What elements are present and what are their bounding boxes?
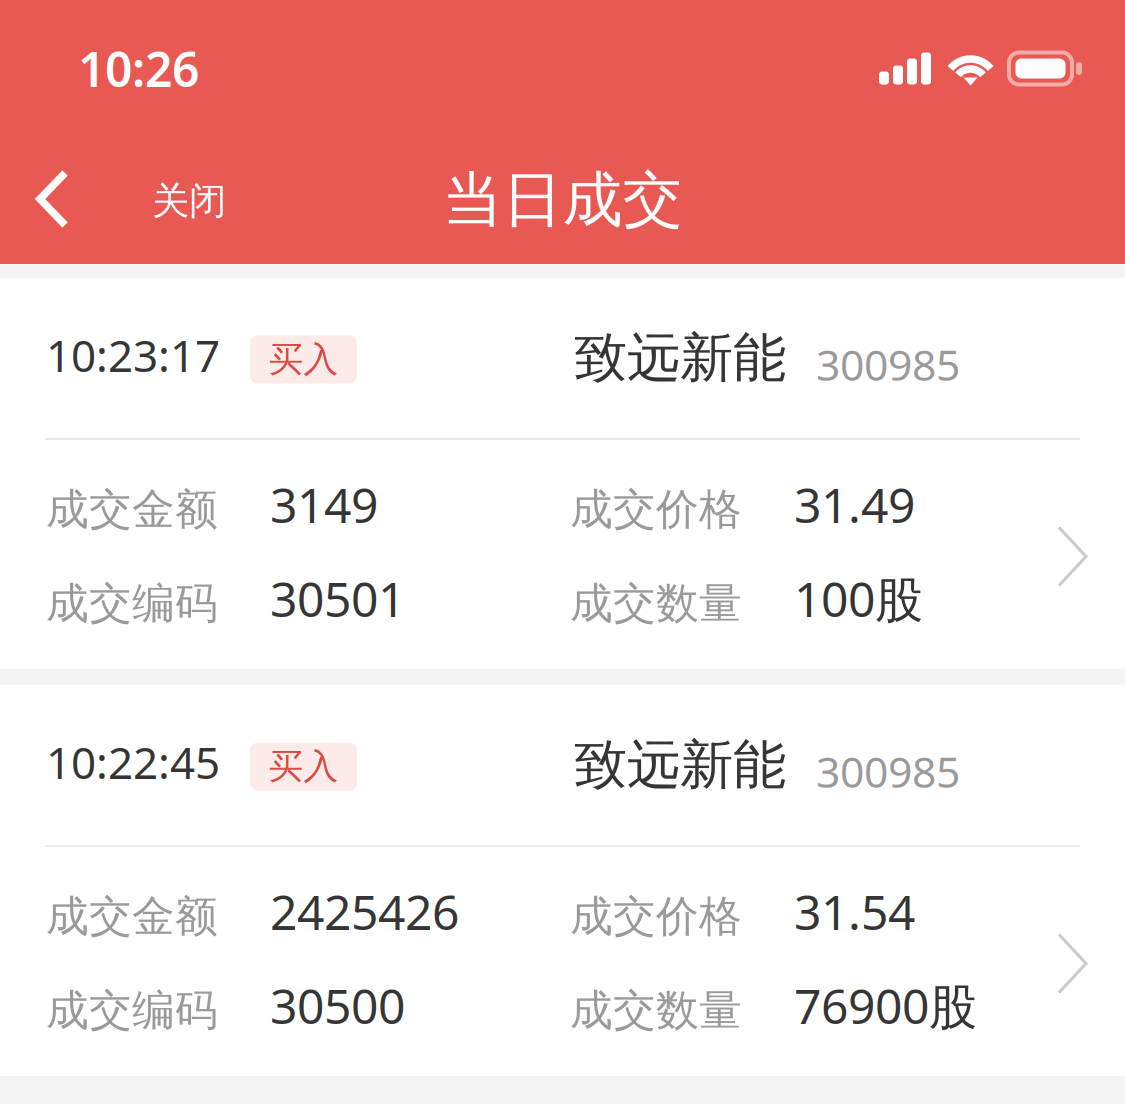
staticText: 成交编码 xyxy=(46,577,218,630)
staticText: 2425426 xyxy=(270,880,459,943)
staticText: 买入 xyxy=(268,338,338,381)
staticText: 致远新能 xyxy=(574,325,786,391)
staticText: 300985 xyxy=(816,336,960,393)
staticText: 买入 xyxy=(268,745,338,788)
button[interactable]: 10:23:17 xyxy=(0,278,1125,669)
staticText: 76900股 xyxy=(794,974,977,1037)
button[interactable]: 关闭 xyxy=(0,132,262,264)
staticText: 300985 xyxy=(816,743,960,800)
staticText: 成交编码 xyxy=(46,984,218,1037)
staticText: 3149 xyxy=(270,473,378,536)
staticText: 30500 xyxy=(270,974,405,1037)
staticText: 成交金额 xyxy=(46,890,218,943)
staticText: 31.54 xyxy=(794,880,915,943)
staticText: 成交数量 xyxy=(570,577,742,630)
staticText: 成交金额 xyxy=(46,483,218,536)
staticText: 成交价格 xyxy=(570,890,742,943)
staticText: 成交数量 xyxy=(570,984,742,1037)
staticText: 10:22:45 xyxy=(46,733,220,791)
staticText: 关闭 xyxy=(152,178,226,224)
staticText: 10:26 xyxy=(78,37,199,100)
staticText: 100股 xyxy=(794,567,923,630)
staticText: 当日成交 xyxy=(442,163,682,237)
staticText: 10:23:17 xyxy=(46,326,220,384)
staticText: 31.49 xyxy=(794,473,915,536)
staticText: 致远新能 xyxy=(574,732,786,798)
button[interactable]: 10:22:45 xyxy=(0,685,1125,1076)
staticText: 30501 xyxy=(270,567,405,630)
staticText: 成交价格 xyxy=(570,483,742,536)
